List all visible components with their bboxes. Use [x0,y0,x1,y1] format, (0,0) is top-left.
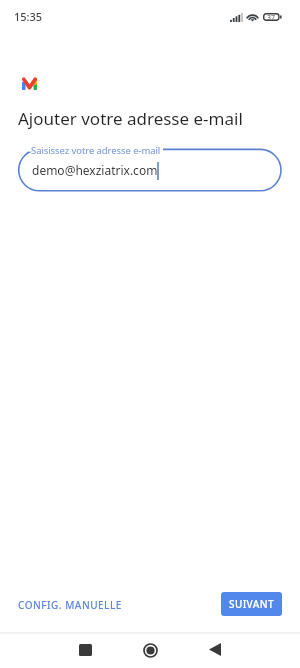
staticText: Saisissez votre adresse e-mail [31,144,161,157]
staticText: 37 [267,13,276,23]
staticText: CONFIG. MANUELLE [18,598,122,612]
button[interactable]: CONFIG. MANUELLE [8,591,132,619]
button[interactable]: Back [195,634,235,667]
staticText: Ajouter votre adresse e-mail [18,107,243,130]
button[interactable]: SUIVANT [221,592,282,616]
button[interactable]: Saisissez votre adresse e-mail [18,149,281,191]
staticText: SUIVANT [229,597,274,611]
button[interactable]: Home [130,634,170,667]
staticText: demo@hexziatrix.com [32,162,158,178]
staticText: 15:35 [14,9,43,24]
button[interactable]: Recent apps [65,634,105,667]
